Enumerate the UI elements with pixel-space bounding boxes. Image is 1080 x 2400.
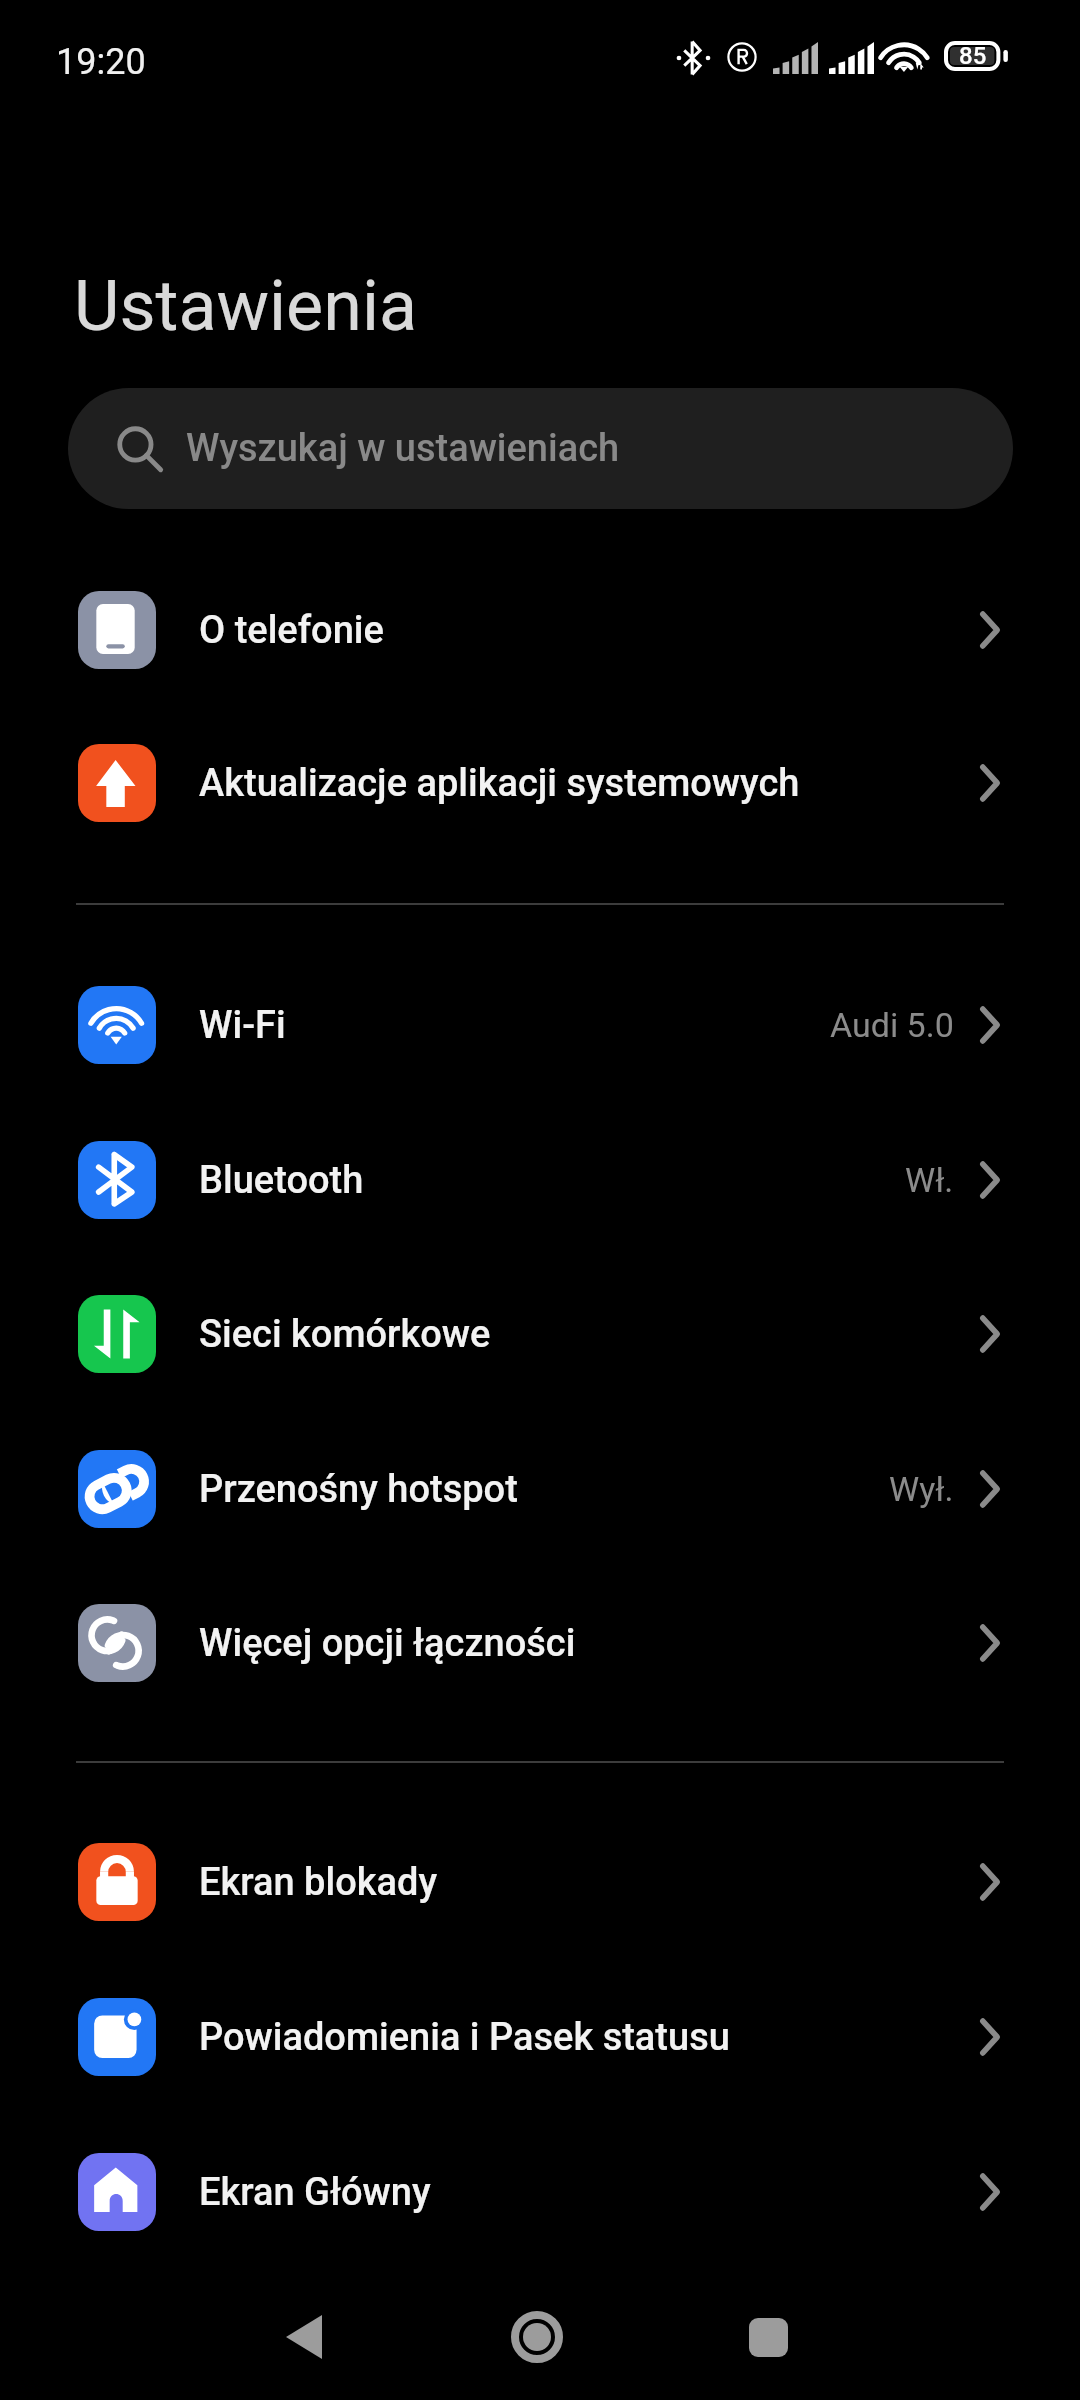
staticText: Wł. — [905, 1160, 954, 1200]
staticText: Ekran blokady — [199, 1860, 980, 1905]
button[interactable]: Bluetooth — [0, 1103, 1080, 1257]
staticText: 85 — [959, 42, 987, 70]
button[interactable]: Wyszukaj w ustawieniach — [68, 388, 1013, 509]
button[interactable]: Aktualizacje aplikacji systemowych — [0, 706, 1080, 860]
button[interactable]: Więcej opcji łączności — [0, 1566, 1080, 1720]
staticText: Powiadomienia i Pasek statusu — [199, 2015, 980, 2060]
button[interactable]: Home — [482, 2282, 592, 2392]
staticText: Wył. — [889, 1469, 954, 1509]
button[interactable]: Wi-Fi — [0, 948, 1080, 1102]
staticText: Bluetooth — [199, 1158, 905, 1203]
staticText: Aktualizacje aplikacji systemowych — [199, 761, 980, 806]
staticText: Wi-Fi — [199, 1003, 830, 1048]
staticText: Więcej opcji łączności — [199, 1621, 980, 1666]
staticText: Audi 5.0 — [830, 1005, 954, 1045]
button[interactable]: Ekran blokady — [0, 1805, 1080, 1959]
button[interactable]: Back — [249, 2282, 359, 2392]
staticText: Wyszukaj w ustawieniach — [186, 426, 620, 471]
staticText: Przenośny hotspot — [199, 1467, 889, 1512]
button[interactable]: Przenośny hotspot — [0, 1412, 1080, 1566]
staticText: Ustawienia — [74, 265, 417, 347]
staticText: O telefonie — [199, 608, 980, 653]
button[interactable]: Ekran Główny — [0, 2115, 1080, 2269]
button[interactable]: Recent apps — [713, 2282, 823, 2392]
staticText: Ekran Główny — [199, 2170, 980, 2215]
staticText: Sieci komórkowe — [199, 1312, 980, 1357]
button[interactable]: O telefonie — [0, 553, 1080, 707]
button[interactable]: Powiadomienia i Pasek statusu — [0, 1960, 1080, 2114]
button[interactable]: Sieci komórkowe — [0, 1257, 1080, 1411]
staticText: 19:20 — [56, 41, 146, 83]
